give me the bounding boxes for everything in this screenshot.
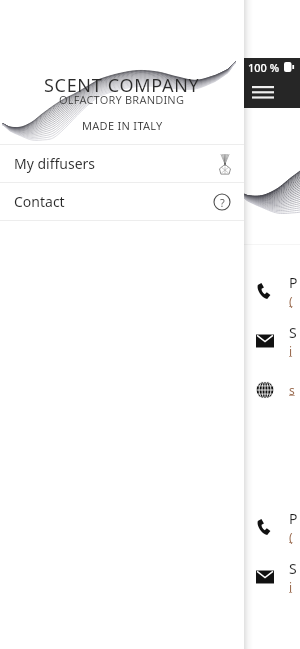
staticText: ?	[220, 195, 225, 210]
staticText: MADE IN ITALY	[82, 118, 163, 133]
button[interactable]: Contact	[0, 183, 244, 220]
staticText: My diffusers	[14, 154, 96, 173]
button[interactable]: Open navigation menu	[252, 84, 274, 100]
button[interactable]: Subject	[0, 322, 300, 360]
staticText: OLFACTORY BRANDING	[59, 92, 185, 107]
button[interactable]: Subject	[0, 558, 300, 596]
staticText: (+39) 035	[289, 529, 298, 545]
staticText: SCENT COMPANY	[44, 73, 200, 98]
staticText: (+39) 035	[289, 293, 298, 309]
staticText: Subject	[289, 559, 298, 578]
staticText: Phone	[289, 273, 298, 292]
staticText: 100 %	[248, 60, 280, 75]
staticText: Phone	[289, 509, 298, 528]
staticText: info@sce	[289, 579, 298, 595]
staticText: Contact	[14, 192, 65, 211]
button[interactable]: scentcom	[0, 371, 300, 409]
staticText: info@sce	[289, 343, 298, 359]
button[interactable]: Phone	[0, 272, 300, 310]
staticText: Subject	[289, 323, 298, 342]
button[interactable]: My diffusers	[0, 145, 244, 182]
staticText: scentcom	[289, 382, 298, 398]
button[interactable]: Phone	[0, 508, 300, 546]
